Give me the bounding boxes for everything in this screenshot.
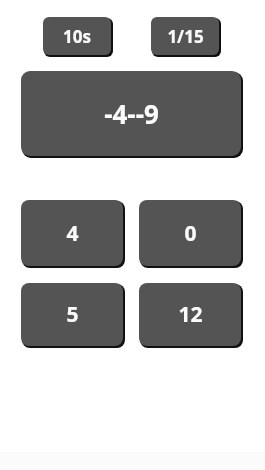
button[interactable]: 5 bbox=[21, 283, 125, 348]
button[interactable]: -4--9 bbox=[21, 71, 243, 158]
button[interactable]: 4 bbox=[21, 200, 125, 268]
staticText: -4--9 bbox=[104, 96, 159, 131]
staticText: 4 bbox=[66, 219, 79, 248]
staticText: 5 bbox=[66, 300, 79, 329]
button[interactable]: 1/15 bbox=[151, 17, 221, 57]
button[interactable]: 10s bbox=[43, 17, 113, 57]
button[interactable]: 12 bbox=[139, 283, 243, 348]
staticText: 10s bbox=[63, 25, 91, 48]
staticText: 12 bbox=[178, 300, 203, 329]
staticText: 1/15 bbox=[167, 25, 204, 48]
button[interactable]: 0 bbox=[139, 200, 243, 268]
staticText: 0 bbox=[184, 219, 197, 248]
